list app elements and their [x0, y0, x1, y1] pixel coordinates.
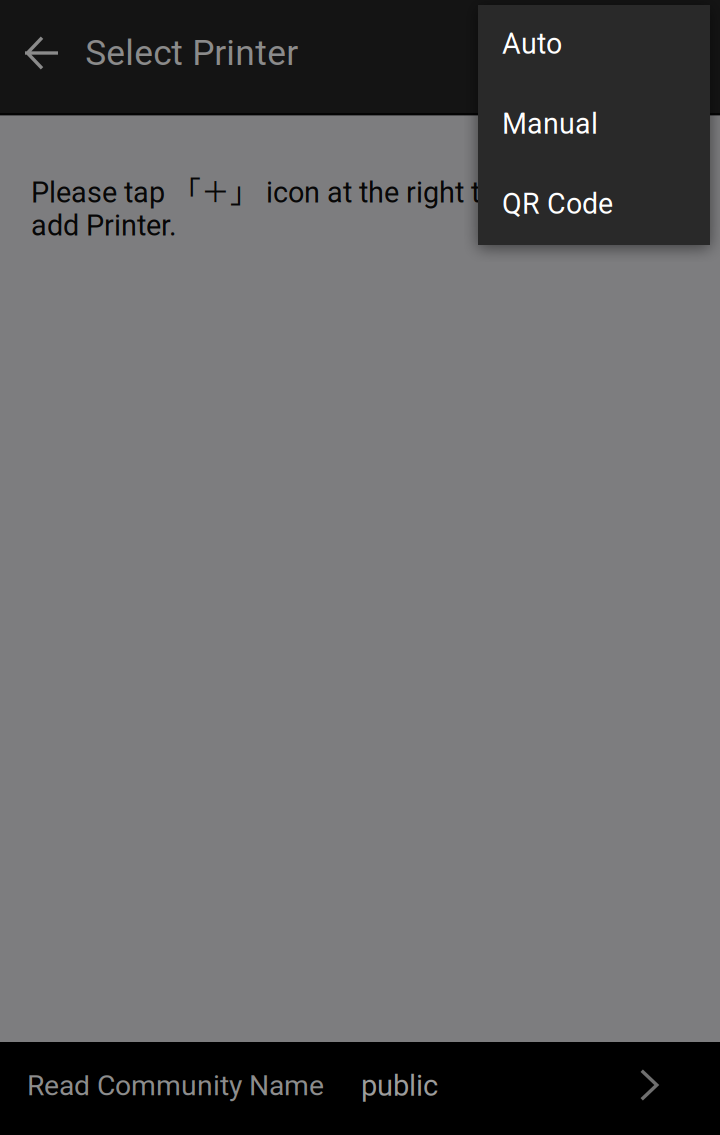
button[interactable]: Auto [478, 5, 710, 85]
staticText: Select Printer [85, 32, 298, 74]
staticText: Please tap 「＋」 icon at the right top to … [31, 169, 544, 242]
button[interactable]: Manual [478, 85, 710, 165]
staticText: public [361, 1069, 438, 1103]
staticText: Manual [502, 107, 598, 141]
staticText: QR Code [502, 187, 613, 221]
button[interactable]: Read Community Name [0, 1042, 720, 1135]
button[interactable]: Back [0, 0, 86, 113]
staticText: Auto [502, 27, 562, 61]
button[interactable]: QR Code [478, 165, 710, 245]
staticText: Read Community Name [27, 1069, 324, 1102]
